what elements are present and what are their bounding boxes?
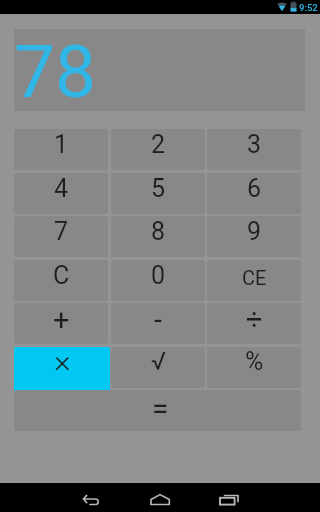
button[interactable]: √ <box>111 347 205 388</box>
staticText: 1 <box>54 130 69 159</box>
staticText: 2 <box>151 130 166 159</box>
staticText: × <box>54 347 71 380</box>
staticText: = <box>152 391 169 426</box>
button[interactable]: 5 <box>111 173 205 214</box>
button[interactable]: % <box>207 347 301 388</box>
button[interactable]: 6 <box>207 173 301 214</box>
staticText: CE <box>242 266 267 289</box>
button[interactable]: 4 <box>14 173 108 214</box>
staticText: 4 <box>54 174 69 203</box>
button[interactable]: - <box>111 303 205 344</box>
button[interactable]: 2 <box>111 129 205 170</box>
staticText: 6 <box>247 174 262 203</box>
button[interactable] <box>78 483 106 512</box>
staticText: C <box>53 261 70 290</box>
staticText: 3 <box>247 130 262 159</box>
button[interactable]: 0 <box>111 260 205 301</box>
staticText: 9 <box>247 217 262 246</box>
button[interactable]: CE <box>207 260 301 301</box>
button[interactable]: 3 <box>207 129 301 170</box>
button[interactable]: 8 <box>111 216 205 257</box>
staticText: 7 <box>54 217 69 246</box>
staticText: 8 <box>151 217 166 246</box>
staticText: 78 <box>14 29 97 111</box>
staticText: + <box>53 303 70 337</box>
staticText: √ <box>151 347 166 376</box>
button[interactable]: C <box>14 260 108 301</box>
button[interactable] <box>214 483 242 512</box>
staticText: 9:52 <box>299 2 318 13</box>
staticText: ÷ <box>246 303 263 337</box>
button[interactable] <box>146 483 174 512</box>
button[interactable]: 9 <box>207 216 301 257</box>
button[interactable]: 1 <box>14 129 108 170</box>
staticText: 5 <box>151 174 166 203</box>
button[interactable]: 7 <box>14 216 108 257</box>
button[interactable]: = <box>14 390 301 431</box>
staticText: 0 <box>151 261 166 290</box>
staticText: % <box>245 347 264 376</box>
button[interactable]: ÷ <box>207 303 301 344</box>
button[interactable]: × <box>14 347 110 392</box>
button[interactable]: + <box>14 303 108 344</box>
button[interactable]: 78 <box>14 29 305 111</box>
staticText: - <box>154 303 163 337</box>
